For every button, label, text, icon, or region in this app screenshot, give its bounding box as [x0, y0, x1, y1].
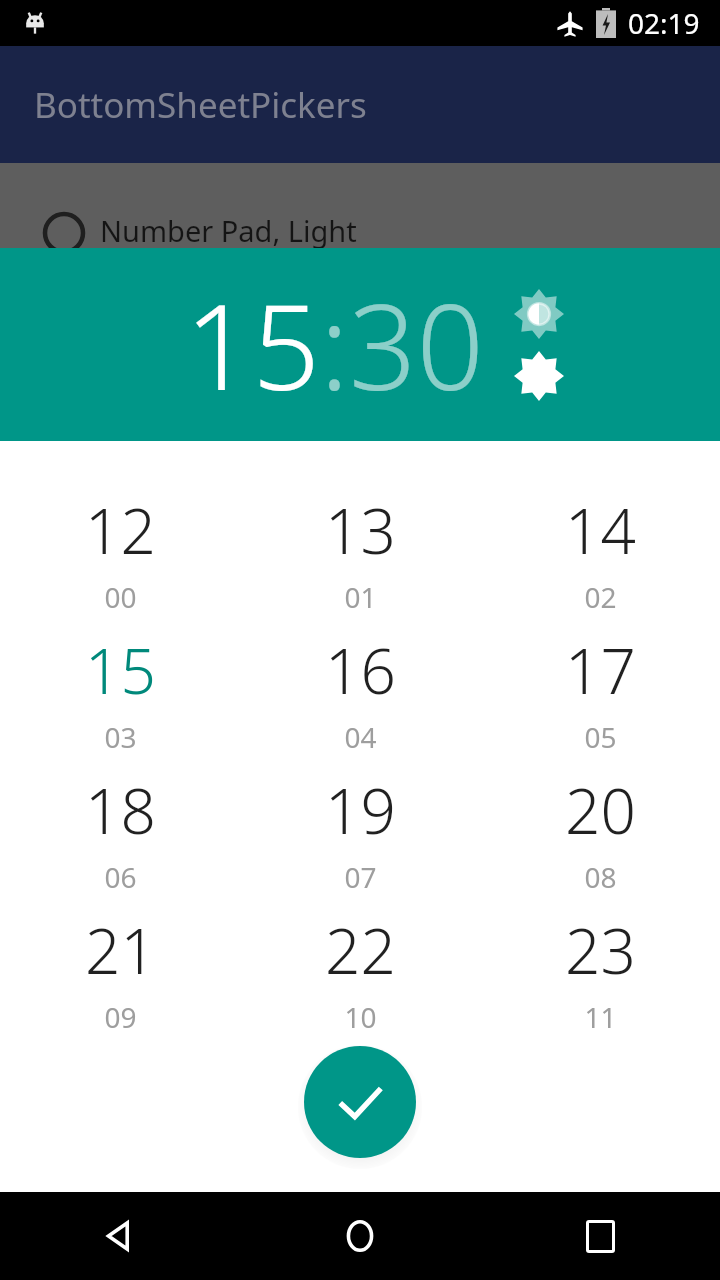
- staticText: 21: [85, 908, 156, 992]
- staticText: BottomSheetPickers: [34, 81, 367, 129]
- staticText: 22: [325, 908, 396, 992]
- staticText: 17: [565, 628, 636, 712]
- staticText: 02: [584, 578, 617, 616]
- button[interactable]: 15: [0, 628, 240, 768]
- staticText: 00: [104, 578, 137, 616]
- button[interactable]: 18: [0, 768, 240, 908]
- button[interactable]: 30: [349, 264, 484, 425]
- staticText: 09: [104, 998, 137, 1036]
- button[interactable]: 22: [240, 908, 480, 1048]
- staticText: 01: [344, 578, 377, 616]
- staticText: 05: [584, 718, 617, 756]
- staticText: 13: [325, 488, 396, 572]
- button[interactable]: Recent apps: [480, 1192, 720, 1280]
- staticText: 12: [85, 488, 156, 572]
- staticText: 06: [104, 858, 137, 896]
- staticText: 10: [344, 998, 377, 1036]
- staticText: 11: [584, 998, 617, 1036]
- staticText: 20: [565, 768, 636, 852]
- button[interactable]: 23: [480, 908, 720, 1048]
- button[interactable]: 13: [240, 488, 480, 628]
- staticText: 16: [325, 628, 396, 712]
- button[interactable]: 14: [480, 488, 720, 628]
- staticText: 02:19: [628, 4, 700, 42]
- button[interactable]: 12: [0, 488, 240, 628]
- button[interactable]: 16: [240, 628, 480, 768]
- staticText: Number Pad, Light: [100, 211, 357, 250]
- button[interactable]: Confirm time: [304, 1046, 416, 1158]
- button[interactable]: 19: [240, 768, 480, 908]
- button[interactable]: 17: [480, 628, 720, 768]
- staticText: 14: [565, 488, 636, 572]
- button[interactable]: 21: [0, 908, 240, 1048]
- staticText: 19: [325, 768, 396, 852]
- staticText: 08: [584, 858, 617, 896]
- staticText: 03: [104, 718, 137, 756]
- button[interactable]: Home: [240, 1192, 480, 1280]
- button[interactable]: Back: [0, 1192, 240, 1280]
- button[interactable]: AM: [510, 285, 568, 343]
- staticText: 07: [344, 858, 377, 896]
- staticText: 15: [85, 628, 156, 712]
- staticText: :: [320, 264, 349, 425]
- staticText: 04: [344, 718, 377, 756]
- button[interactable]: PM: [510, 347, 568, 405]
- staticText: 18: [85, 768, 156, 852]
- staticText: 23: [565, 908, 636, 992]
- button[interactable]: 15: [185, 264, 320, 425]
- button[interactable]: 20: [480, 768, 720, 908]
